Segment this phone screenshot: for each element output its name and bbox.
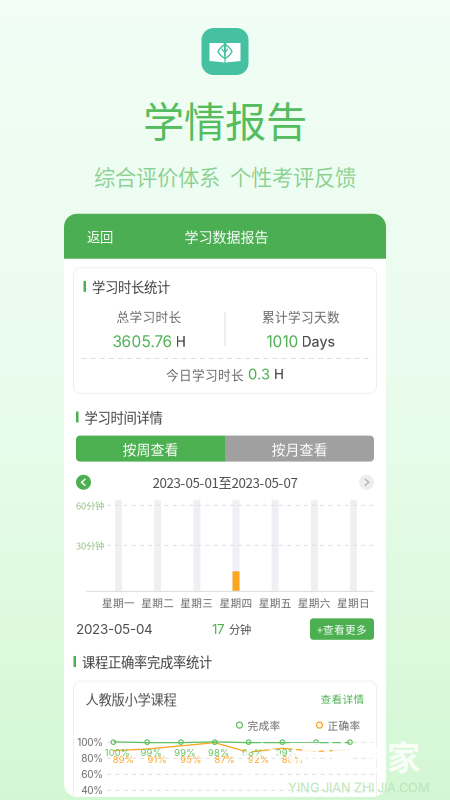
button[interactable]: 下一周: [359, 475, 374, 490]
staticText: 学习时长统计: [92, 277, 170, 296]
staticText: 99%: [276, 747, 297, 758]
button[interactable]: +查看更多: [310, 618, 374, 640]
staticText: 99%: [174, 747, 195, 758]
staticText: 星期六: [298, 595, 331, 610]
staticText: 17: [212, 621, 225, 637]
staticText: 总学习时长: [116, 307, 181, 325]
staticText: 30分钟: [76, 539, 104, 552]
staticText: 星期一: [102, 595, 135, 610]
staticText: 按月查看: [271, 438, 327, 459]
staticText: 学习数据报告: [184, 226, 268, 246]
staticText: 查看详情: [320, 691, 364, 706]
staticText: 99%: [140, 747, 161, 758]
staticText: 人教版小学课程: [85, 689, 176, 708]
staticText: 分钟: [229, 621, 251, 637]
staticText: 学习时间详情: [84, 407, 162, 427]
staticText: 正确率: [327, 717, 360, 733]
staticText: Days: [301, 333, 335, 350]
staticText: 3605.76: [112, 332, 172, 351]
staticText: +查看更多: [317, 621, 367, 637]
staticText: 91%: [147, 754, 166, 765]
staticText: 学情报告: [143, 89, 307, 149]
staticText: 课程正确率完成率统计: [82, 652, 212, 671]
staticText: 按周查看: [122, 438, 178, 459]
staticText: 返回: [87, 227, 113, 246]
staticText: 60分钟: [76, 499, 104, 512]
staticText: YING JIAN ZHI JIA.COM: [288, 780, 430, 796]
staticText: 硬件之家: [288, 731, 420, 779]
button[interactable]: 查看详情: [320, 691, 364, 706]
staticText: 综合评价体系 个性考评反馈: [94, 161, 356, 192]
staticText: 0.3: [248, 365, 270, 383]
staticText: 星期五: [259, 595, 292, 610]
button[interactable]: 返回: [64, 214, 129, 259]
staticText: 40%: [81, 784, 103, 796]
staticText: 星期日: [337, 595, 370, 610]
staticText: 星期三: [180, 595, 213, 610]
staticText: 今日学习时长: [166, 365, 244, 383]
staticText: 60%: [81, 768, 103, 780]
staticText: 95%: [180, 754, 201, 765]
button[interactable]: 上一周: [76, 475, 91, 490]
staticText: 1010: [266, 332, 298, 351]
staticText: 完成率: [247, 717, 280, 733]
staticText: 星期二: [141, 595, 174, 610]
button[interactable]: 按周查看: [76, 436, 225, 462]
staticText: 88%: [282, 754, 303, 765]
button[interactable]: 按月查看: [225, 436, 374, 462]
staticText: 87%: [215, 754, 235, 765]
staticText: 92%: [248, 754, 269, 765]
staticText: 累计学习天数: [262, 307, 340, 325]
staticText: 80%: [81, 752, 103, 764]
staticText: 89%: [113, 754, 134, 765]
staticText: 100%: [77, 736, 103, 748]
staticText: H: [274, 366, 284, 382]
staticText: 2023-05-04: [76, 621, 153, 637]
staticText: 星期四: [219, 595, 252, 610]
staticText: 2023-05-01至2023-05-07: [152, 473, 297, 492]
staticText: 98%: [208, 747, 229, 758]
staticText: 100%: [105, 747, 130, 758]
staticText: H: [175, 333, 185, 350]
staticText: 98%: [242, 747, 263, 758]
